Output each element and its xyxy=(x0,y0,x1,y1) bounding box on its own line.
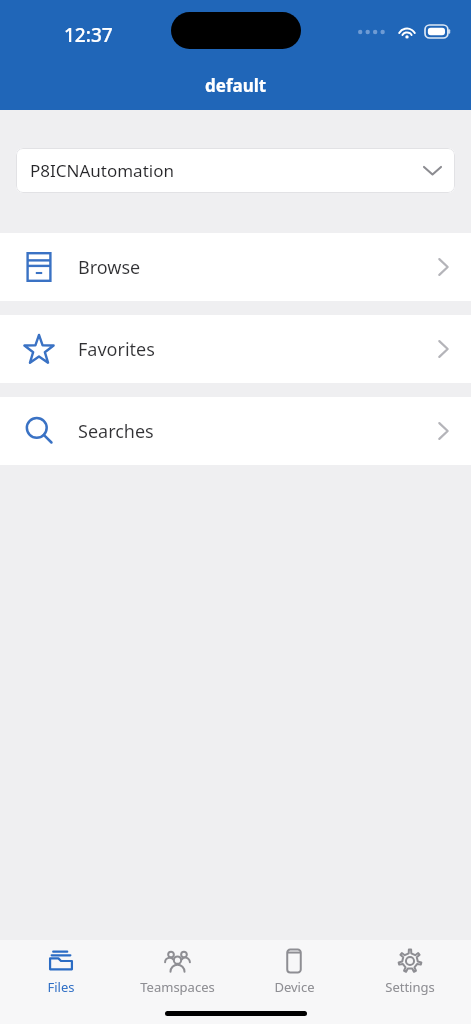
staticText: Searches xyxy=(78,419,438,444)
staticText: Favorites xyxy=(78,337,438,362)
button[interactable]: Teamspaces xyxy=(122,943,232,1000)
staticText: Device xyxy=(274,978,315,996)
staticText: Settings xyxy=(385,978,435,996)
staticText: Teamspaces xyxy=(140,978,215,996)
button[interactable]: Browse xyxy=(0,233,471,301)
button[interactable]: P8ICNAutomation xyxy=(16,148,455,193)
staticText: 12:37 xyxy=(64,22,113,48)
staticText: P8ICNAutomation xyxy=(30,159,424,182)
button[interactable]: Favorites xyxy=(0,315,471,383)
button[interactable]: Device xyxy=(239,943,349,1000)
staticText: Files xyxy=(47,978,75,996)
staticText: default xyxy=(205,74,267,97)
button[interactable]: Settings xyxy=(355,943,465,1000)
button[interactable]: Searches xyxy=(0,397,471,465)
staticText: Browse xyxy=(78,255,438,280)
button[interactable]: Files xyxy=(6,943,116,1000)
